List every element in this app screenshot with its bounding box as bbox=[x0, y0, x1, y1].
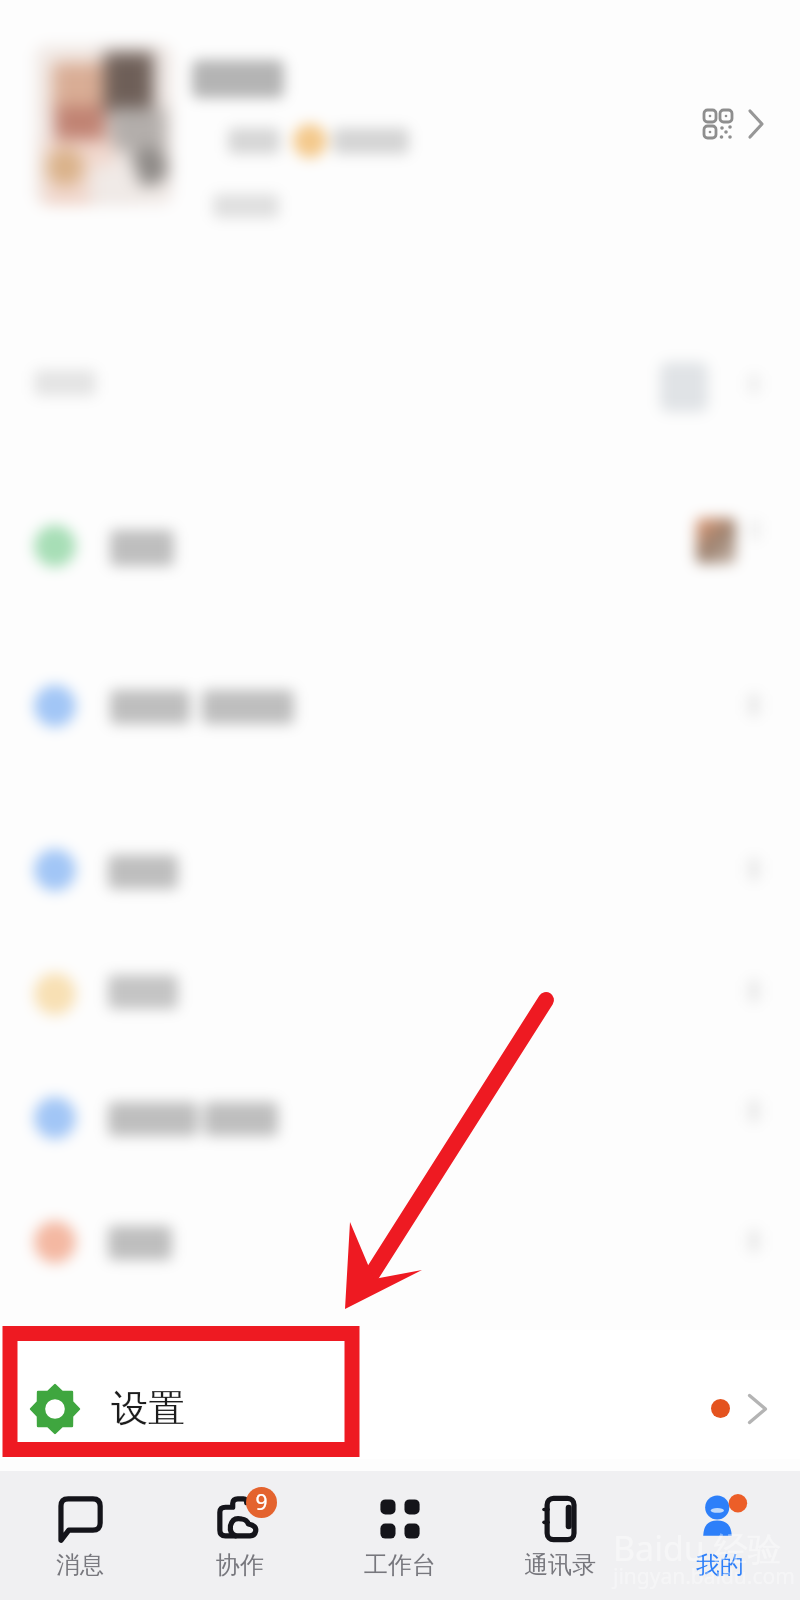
staticText: jingyan.baidu.com bbox=[613, 1562, 795, 1591]
button[interactable]: Profile details bbox=[738, 100, 774, 148]
button[interactable]: 消息 bbox=[0, 1471, 160, 1580]
button[interactable]: Mobile phone bbox=[0, 640, 800, 760]
button[interactable]: 设置 bbox=[0, 1330, 800, 1459]
staticText: 通讯录 bbox=[524, 1550, 596, 1580]
staticText: 我的 bbox=[696, 1550, 744, 1580]
staticText: 协作 bbox=[216, 1550, 264, 1580]
button[interactable]: 我的 bbox=[640, 1471, 800, 1580]
button[interactable]: My QR code bbox=[694, 100, 742, 148]
staticText: 工作台 bbox=[364, 1550, 436, 1580]
button[interactable]: 9 bbox=[160, 1471, 320, 1580]
button[interactable]: Favourites bbox=[0, 470, 800, 590]
button[interactable]: Status bbox=[0, 340, 800, 460]
button[interactable]: 工作台 bbox=[320, 1471, 480, 1580]
button[interactable]: Profile bbox=[0, 30, 800, 220]
staticText: 消息 bbox=[56, 1550, 104, 1580]
staticText: 设置 bbox=[111, 1385, 185, 1432]
staticText: 9 bbox=[255, 1488, 268, 1517]
button[interactable]: Wallet bbox=[0, 810, 800, 930]
button[interactable]: 通讯录 bbox=[480, 1471, 640, 1580]
staticText: Baidu 经验 bbox=[613, 1525, 782, 1571]
button[interactable]: Cloud storage bbox=[0, 1055, 800, 1175]
button[interactable]: Help and feedback bbox=[0, 1180, 800, 1300]
button[interactable]: Coupons bbox=[0, 930, 800, 1050]
